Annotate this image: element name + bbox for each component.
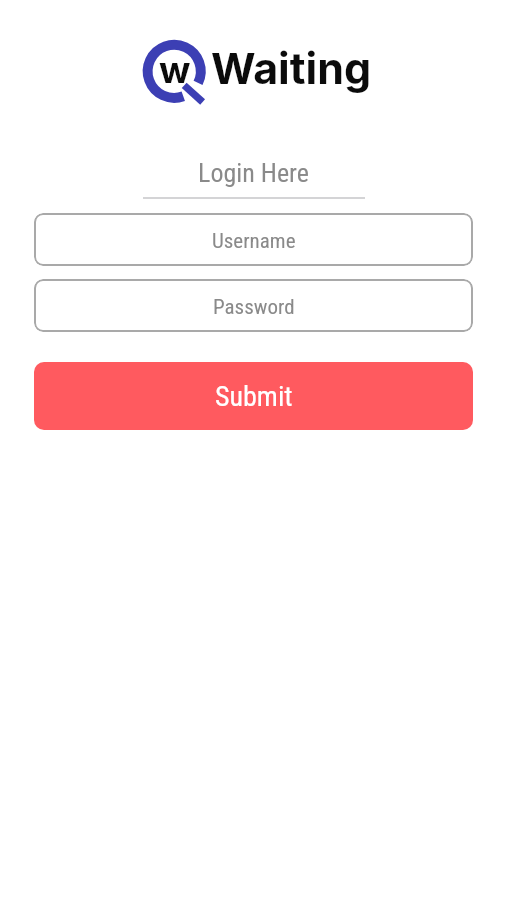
staticText: w — [159, 47, 191, 92]
button[interactable]: Username — [34, 213, 473, 266]
staticText: Username — [212, 229, 296, 254]
staticText: Submit — [215, 380, 293, 413]
button[interactable]: Password — [34, 279, 473, 332]
staticText: Login Here — [198, 158, 309, 188]
staticText: Password — [213, 295, 295, 320]
button[interactable]: Submit — [34, 362, 473, 430]
staticText: Waiting — [211, 42, 372, 94]
